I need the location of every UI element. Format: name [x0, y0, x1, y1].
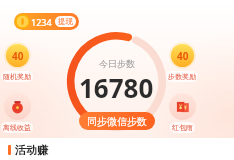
staticText: 离线收益 — [3, 123, 31, 132]
button[interactable]: 步数奖励 — [164, 42, 200, 82]
staticText: 红包雨 — [172, 123, 193, 132]
staticText: 40 — [12, 49, 24, 63]
button[interactable]: 红包雨 — [164, 93, 200, 133]
staticText: 40 — [177, 49, 189, 63]
staticText: 随机奖励 — [3, 72, 31, 81]
button[interactable]: 1234 — [14, 13, 79, 30]
staticText: 16780 — [79, 70, 154, 105]
button[interactable]: 离线收益 — [0, 93, 35, 133]
staticText: 今日步数 — [99, 58, 135, 69]
staticText: 1234 — [31, 16, 52, 28]
button[interactable]: 活动赚 — [8, 143, 234, 157]
button[interactable]: 同步微信步数 — [79, 112, 155, 130]
staticText: 提现 — [58, 17, 73, 26]
button[interactable]: 随机奖励 — [0, 42, 35, 82]
button[interactable]: 提现 — [55, 16, 76, 27]
staticText: 同步微信步数 — [87, 115, 147, 128]
staticText: 步数奖励 — [168, 72, 196, 81]
staticText: 活动赚 — [15, 143, 48, 157]
